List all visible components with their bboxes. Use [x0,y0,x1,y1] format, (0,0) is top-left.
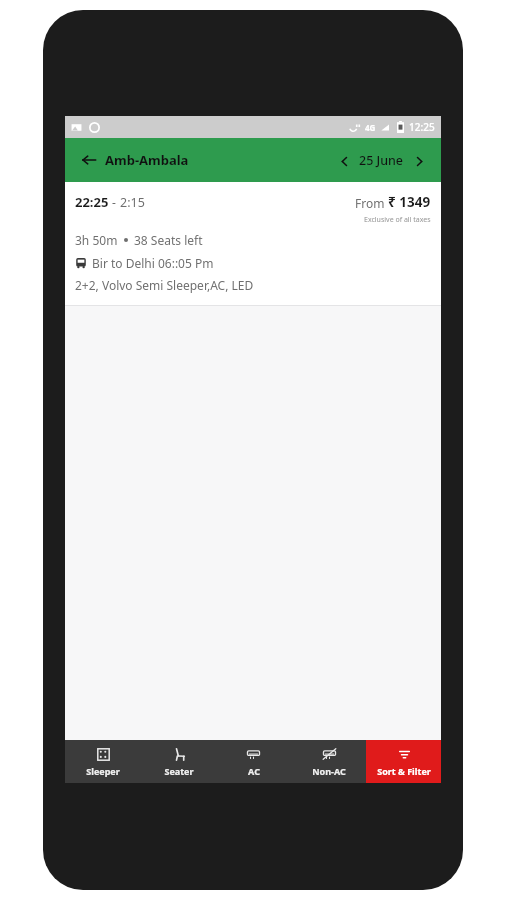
staticText: 22:25 [75,193,109,211]
staticText: 2+2, Volvo Semi Sleeper,AC, LED [75,277,254,293]
staticText: Sleeper [86,765,120,777]
button[interactable]: Back [77,145,193,175]
button[interactable]: Sleeper [65,740,141,783]
staticText: 2:15 [120,194,145,211]
staticText: AC [248,765,260,777]
button[interactable]: Sort & Filter [366,740,441,783]
staticText: 12:25 [409,120,435,134]
staticText: 4G [365,122,376,133]
button[interactable]: AC [216,740,291,783]
button[interactable]: 25 June [356,146,407,175]
staticText: 3h 50m [75,232,118,248]
button[interactable]: Next day [409,151,429,171]
staticText: Amb-Ambala [105,151,189,169]
staticText: 38 Seats left [134,232,203,248]
button[interactable]: Previous day [334,151,354,171]
staticText: ₹ 1349 [388,193,431,211]
staticText: Sort & Filter [377,765,431,777]
other: Back [81,152,97,168]
button[interactable]: Non-AC [291,740,366,783]
staticText: - [109,194,120,210]
staticText: Bir to Delhi 06::05 Pm [92,255,214,271]
button[interactable]: 22:25 [65,182,441,305]
staticText: From [355,195,388,211]
staticText: Non-AC [312,765,346,777]
staticText: Exclusive of all taxes [364,215,431,225]
staticText: 25 June [359,152,404,169]
staticText: Seater [164,765,194,777]
button[interactable]: Seater [141,740,216,783]
